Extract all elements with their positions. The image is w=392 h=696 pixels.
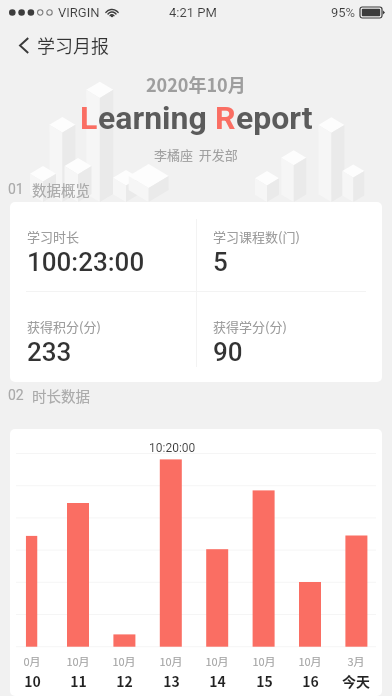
button[interactable]: 学习时长 [10, 202, 196, 292]
staticText: 233 [27, 337, 72, 367]
staticText: 13 [163, 671, 180, 691]
button[interactable]: 获得积分(分) [10, 292, 196, 382]
staticText: earning [98, 99, 215, 137]
staticText: 今天 [342, 671, 370, 691]
staticText: 100:23:00 [27, 247, 145, 277]
staticText: 90 [213, 337, 243, 367]
staticText: 10月 [205, 653, 229, 669]
staticText: 10月 [298, 653, 322, 669]
staticText: 15 [256, 671, 273, 691]
staticText: 学习课程数(门) [213, 227, 300, 246]
staticText: 获得积分(分) [27, 317, 101, 336]
staticText: 李橘座 开发部 [154, 145, 238, 164]
button[interactable]: Back [0, 24, 46, 66]
staticText: 95% [331, 5, 356, 20]
button[interactable]: 学习课程数(门) [196, 202, 382, 292]
staticText: 14 [209, 671, 226, 691]
staticText: 10月 [159, 653, 183, 669]
staticText: R [215, 99, 236, 137]
staticText: 学习月报 [37, 32, 109, 58]
button[interactable]: 获得学分(分) [196, 292, 382, 382]
staticText: 10:20:00 [149, 441, 196, 455]
staticText: 10月 [112, 653, 136, 669]
staticText: 12 [116, 671, 133, 691]
staticText: eport [236, 99, 313, 137]
staticText: 11 [70, 671, 87, 691]
staticText: 3月 [347, 653, 365, 669]
staticText: 数据概览 [32, 179, 90, 200]
staticText: 10月 [66, 653, 90, 669]
staticText: 02 [8, 387, 24, 403]
staticText: 学习时长 [27, 227, 80, 246]
staticText: 0月 [23, 653, 41, 669]
staticText: 获得学分(分) [213, 317, 287, 336]
staticText: VIRGIN [58, 5, 100, 20]
staticText: 5 [213, 247, 228, 277]
staticText: L [80, 99, 98, 137]
staticText: 4:21 PM [169, 5, 217, 20]
staticText: 10 [24, 671, 41, 691]
staticText: 16 [302, 671, 319, 691]
staticText: 10月 [252, 653, 276, 669]
staticText: 2020年10月 [146, 71, 246, 97]
staticText: 01 [8, 181, 24, 197]
staticText: 时长数据 [32, 385, 90, 406]
